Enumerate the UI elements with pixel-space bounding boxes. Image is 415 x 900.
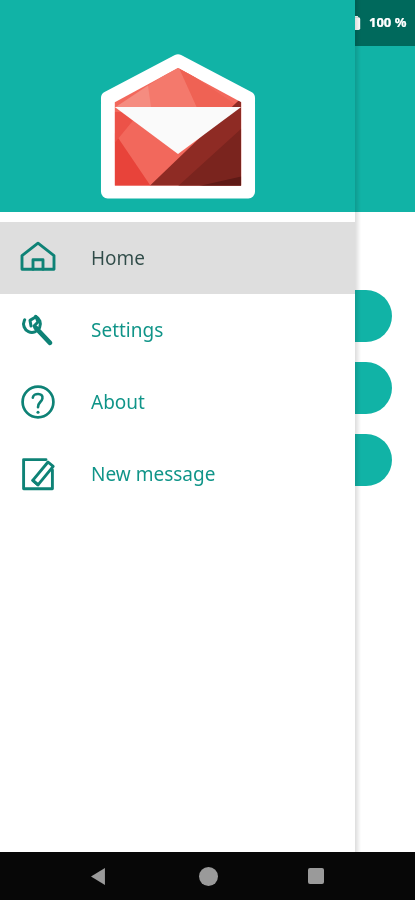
button[interactable]: Recent apps <box>294 854 338 898</box>
button[interactable]: About <box>0 366 355 438</box>
button[interactable] <box>240 362 392 414</box>
staticText: About <box>91 389 145 415</box>
button[interactable]: Settings <box>0 294 355 366</box>
staticText: Home <box>91 245 146 271</box>
button[interactable] <box>240 434 392 486</box>
button[interactable]: Home <box>0 222 355 294</box>
button[interactable]: Back <box>77 854 121 898</box>
button[interactable] <box>240 290 392 342</box>
staticText: 100 % <box>369 13 407 31</box>
button[interactable]: New message <box>0 438 355 510</box>
button[interactable]: Home <box>186 854 230 898</box>
staticText: New message <box>91 461 216 487</box>
staticText: Settings <box>91 317 164 343</box>
